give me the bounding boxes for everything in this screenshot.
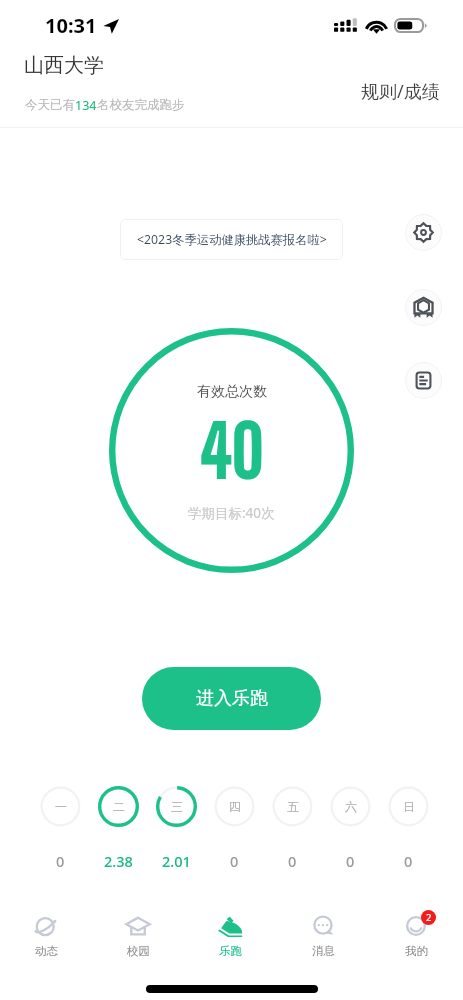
staticText: 2 bbox=[426, 911, 432, 924]
staticText: <2023冬季运动健康挑战赛报名啦> bbox=[137, 231, 327, 248]
button[interactable]: 二 bbox=[92, 786, 144, 871]
staticText: 今天已有 bbox=[25, 97, 75, 113]
staticText: 0 bbox=[288, 851, 297, 871]
staticText: 2.01 bbox=[162, 851, 191, 871]
staticText: 五 bbox=[287, 799, 299, 814]
staticText: 动态 bbox=[35, 944, 58, 958]
staticText: 我的 bbox=[405, 944, 428, 958]
button[interactable]: 消息 bbox=[277, 911, 370, 962]
staticText: 日 bbox=[403, 799, 415, 814]
button[interactable]: 乐跑 bbox=[184, 911, 277, 962]
staticText: 40 bbox=[199, 408, 264, 494]
staticText: 0 bbox=[230, 851, 239, 871]
button[interactable]: 日 bbox=[382, 786, 434, 871]
staticText: 四 bbox=[229, 799, 241, 814]
button[interactable]: 一 bbox=[34, 786, 86, 871]
staticText: 10:31 bbox=[45, 12, 97, 39]
button[interactable]: 六 bbox=[324, 786, 376, 871]
button[interactable]: Medal bbox=[405, 289, 442, 326]
button[interactable]: 五 bbox=[266, 786, 318, 871]
staticText: 0 bbox=[404, 851, 413, 871]
staticText: 校园 bbox=[127, 944, 150, 958]
staticText: 消息 bbox=[312, 944, 335, 958]
button[interactable]: <2023冬季运动健康挑战赛报名啦> bbox=[120, 219, 343, 260]
staticText: 134 bbox=[75, 97, 97, 114]
button[interactable]: Records bbox=[405, 362, 442, 399]
staticText: 乐跑 bbox=[219, 944, 242, 958]
button[interactable]: 校园 bbox=[92, 911, 184, 962]
button[interactable]: 三 bbox=[150, 786, 202, 871]
button[interactable]: 进入乐跑 bbox=[142, 667, 321, 730]
staticText: 名校友完成跑步 bbox=[97, 97, 185, 113]
staticText: 一 bbox=[55, 799, 67, 814]
staticText: 有效总次数 bbox=[197, 383, 267, 401]
staticText: 二 bbox=[113, 799, 125, 814]
staticText: 规则/成绩 bbox=[361, 79, 440, 104]
staticText: 0 bbox=[346, 851, 355, 871]
staticText: 山西大学 bbox=[24, 53, 104, 78]
staticText: 三 bbox=[171, 799, 183, 814]
button[interactable]: 2 bbox=[370, 911, 463, 962]
button[interactable]: 动态 bbox=[0, 911, 92, 962]
staticText: 0 bbox=[56, 851, 65, 871]
button[interactable]: 四 bbox=[208, 786, 260, 871]
button[interactable]: 规则/成绩 bbox=[351, 71, 450, 112]
button[interactable]: Settings bbox=[405, 214, 442, 251]
staticText: 进入乐跑 bbox=[196, 687, 268, 710]
staticText: 六 bbox=[345, 799, 357, 814]
staticText: 2.38 bbox=[104, 851, 133, 871]
staticText: 学期目标:40次 bbox=[188, 504, 275, 522]
